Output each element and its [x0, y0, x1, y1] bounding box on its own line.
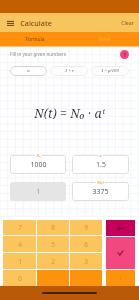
staticText: Fill in your given numbers [10, 51, 66, 57]
staticText: 1000 [30, 160, 47, 170]
staticText: . [85, 274, 87, 283]
staticText: 1 [36, 187, 41, 197]
staticText: 6 [84, 240, 88, 249]
staticText: 8 [51, 223, 55, 232]
staticText: N₀ [36, 153, 41, 158]
staticText: 7 [18, 223, 22, 232]
button[interactable]: 0 [3, 270, 36, 286]
staticText: , [52, 274, 54, 283]
button[interactable]: 1.5 [72, 155, 129, 174]
button[interactable]: 1000 [10, 155, 66, 174]
button[interactable]: 1 + r [50, 66, 88, 76]
button[interactable]: 6 [70, 236, 102, 252]
button[interactable]: 4 [3, 236, 36, 252]
staticText: N(t) [97, 180, 104, 185]
staticText: Calculate [20, 18, 52, 28]
staticText: 3 [84, 257, 88, 266]
button[interactable]: 1 [3, 253, 36, 269]
staticText: Solve [98, 36, 111, 43]
button[interactable]: 7 [3, 220, 36, 235]
staticText: Formula [25, 36, 45, 43]
button[interactable]: 1 + p/100 [91, 66, 129, 76]
staticText: 1 [18, 257, 22, 266]
staticText: 9 [84, 223, 88, 232]
button[interactable]: 8 [37, 220, 69, 235]
staticText: 5 [51, 240, 55, 249]
button[interactable]: 9 [70, 220, 102, 235]
staticText: a [27, 68, 30, 74]
staticText: / [119, 274, 122, 282]
staticText: 1 + r [65, 68, 74, 74]
staticText: ? [123, 51, 126, 58]
button[interactable]: Clear [116, 15, 139, 30]
staticText: 0 [18, 274, 22, 283]
staticText: 4 [18, 240, 22, 249]
button[interactable]: Backspace [106, 220, 135, 236]
staticText: 2 [51, 257, 55, 266]
button[interactable]: a [10, 66, 47, 76]
button[interactable]: Help [120, 50, 129, 59]
staticText: Clear [121, 19, 134, 26]
button[interactable]: 5 [37, 236, 69, 252]
staticText: a [99, 153, 102, 158]
staticText: 1 + p/100 [101, 68, 119, 74]
staticText: 3375 [92, 187, 109, 197]
staticText: N(t) = N₀ · aᵗ [34, 105, 105, 119]
button[interactable]: Confirm [106, 237, 135, 269]
button[interactable]: 3 [70, 253, 102, 269]
staticText: 1.5 [96, 160, 106, 170]
button[interactable]: 1 [10, 182, 66, 201]
button[interactable]: Formula [0, 32, 69, 47]
button[interactable]: 3375 [72, 182, 129, 201]
button[interactable]: Solve [69, 32, 139, 47]
button[interactable]: Menu [0, 13, 20, 32]
button[interactable]: 2 [37, 253, 69, 269]
